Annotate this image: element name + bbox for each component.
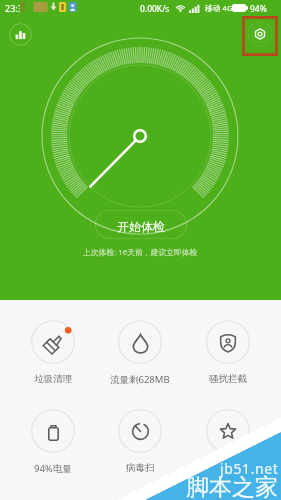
button[interactable]: 94%电量 [9, 389, 96, 478]
staticText: jb51.net [220, 459, 279, 478]
button[interactable] [184, 389, 272, 478]
staticText: 骚扰拦截 [209, 373, 247, 385]
button[interactable]: 流量剩628MB [96, 300, 184, 389]
staticText: 垃圾清理 [34, 373, 72, 385]
staticText: 0.00K/s [140, 3, 170, 15]
button[interactable]: 垃圾清理 [9, 300, 96, 389]
staticText: 病毒扫 [126, 462, 155, 474]
staticText: 上次体检: 16天前，建议立即体检 [83, 247, 198, 258]
staticText: 脚本之家 [186, 473, 278, 500]
button[interactable]: Statistics [9, 23, 32, 46]
staticText: 移动 4G [205, 3, 233, 14]
button[interactable]: 病毒扫 [96, 389, 184, 478]
staticText: 开始体检 [117, 219, 165, 234]
staticText: 94%电量 [34, 462, 72, 475]
button[interactable]: 骚扰拦截 [184, 300, 272, 389]
staticText: 23:3 [5, 2, 23, 14]
staticText: 94% [250, 3, 267, 15]
staticText: 流量剩628MB [110, 373, 170, 386]
button[interactable]: Settings [242, 16, 278, 56]
button[interactable]: 开始体检 [95, 210, 187, 239]
